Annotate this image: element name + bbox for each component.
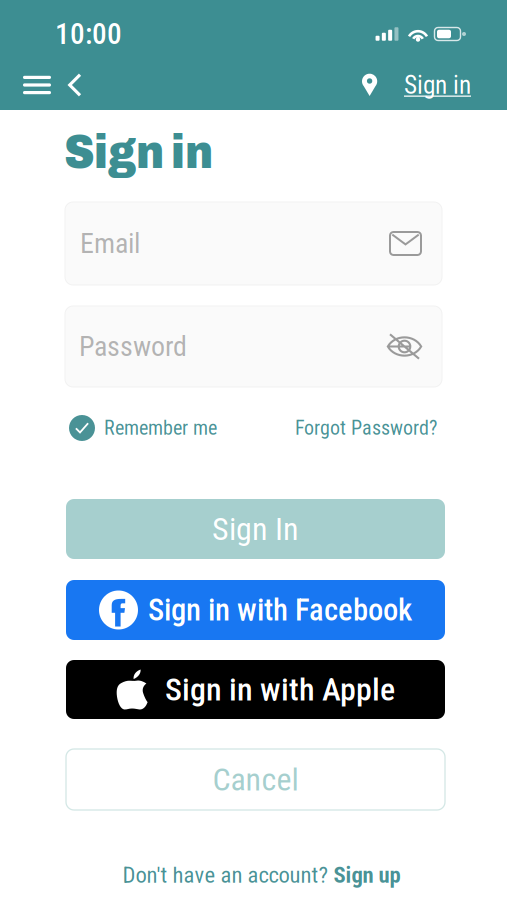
button[interactable]: Sign In: [66, 499, 445, 559]
button[interactable]: Remember me: [69, 415, 217, 441]
staticText: Sign in with Facebook: [148, 592, 412, 628]
button[interactable]: Don't have an account?: [114, 860, 392, 890]
button[interactable]: Back: [58, 65, 92, 105]
staticText: Remember me: [104, 416, 217, 440]
staticText: Sign in with Apple: [165, 671, 395, 708]
staticText: Email: [80, 227, 140, 260]
button[interactable]: Forgot Password?: [295, 416, 437, 440]
staticText: Password: [79, 330, 187, 363]
staticText: Sign in: [64, 126, 213, 178]
button[interactable]: Cancel: [66, 749, 445, 810]
staticText: 10:00: [55, 17, 122, 51]
staticText: Sign in: [404, 70, 471, 100]
button[interactable]: Sign in with Facebook: [66, 580, 445, 640]
button[interactable]: Sign in with Apple: [66, 660, 445, 719]
staticText: Forgot Password?: [295, 416, 437, 440]
button[interactable]: Menu: [16, 65, 58, 105]
staticText: Don't have an account?: [122, 862, 333, 888]
button[interactable]: Sign in: [362, 65, 471, 105]
staticText: Sign In: [212, 510, 299, 548]
staticText: Sign up: [333, 862, 400, 888]
staticText: Cancel: [212, 761, 298, 798]
